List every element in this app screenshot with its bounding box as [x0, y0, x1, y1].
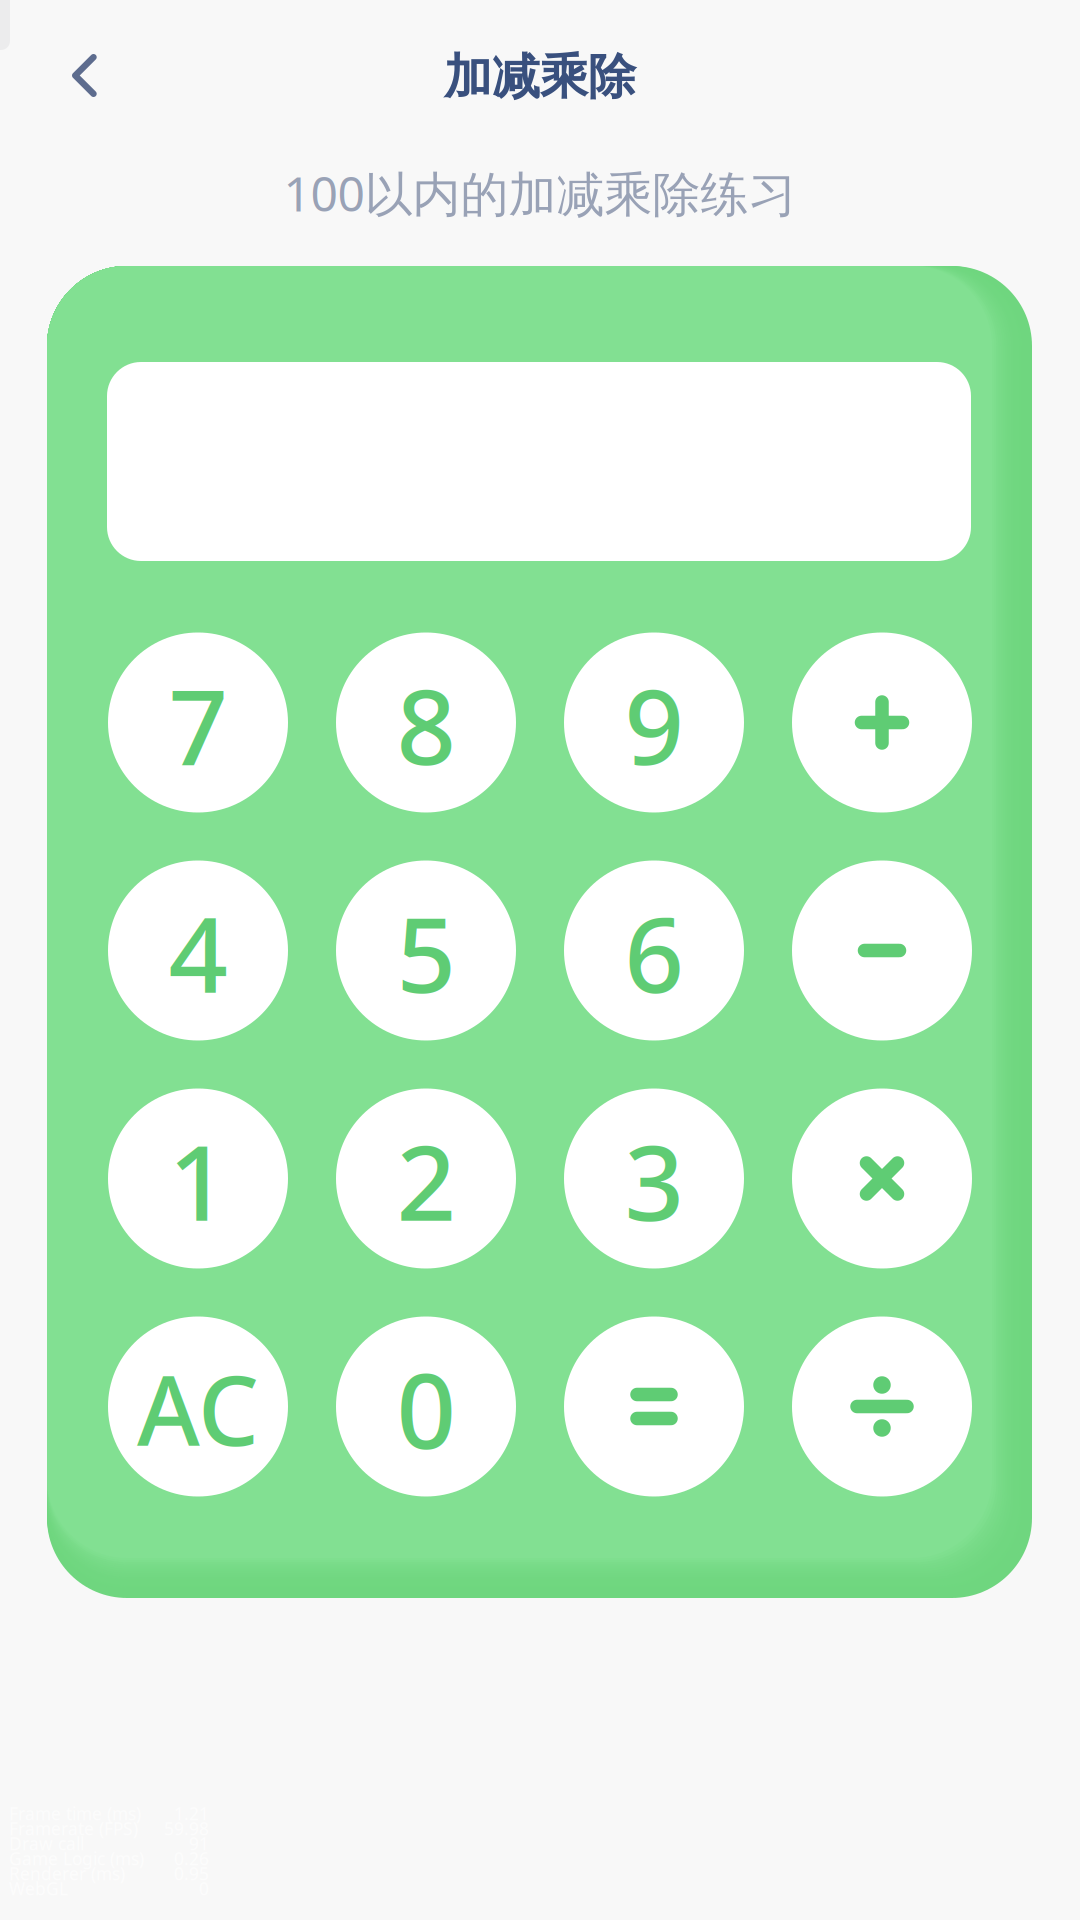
staticText: 6 — [624, 883, 683, 1021]
staticText: 5 — [396, 883, 455, 1021]
button[interactable]: 0 — [336, 1316, 516, 1496]
staticText: 4 — [168, 883, 227, 1021]
staticText: 3 — [624, 1111, 683, 1249]
staticText: 1 — [168, 1111, 227, 1249]
button[interactable]: Plus — [792, 632, 972, 812]
button[interactable]: 4 — [108, 860, 288, 1040]
staticText: 7 — [168, 655, 227, 793]
button[interactable]: 7 — [108, 632, 288, 812]
staticText: 100以内的加减乘除练习 — [283, 161, 796, 225]
button[interactable]: Minus — [792, 860, 972, 1040]
button[interactable]: 3 — [564, 1088, 744, 1268]
button[interactable]: Multiply — [792, 1088, 972, 1268]
button[interactable]: 6 — [564, 860, 744, 1040]
button[interactable]: Divide — [792, 1316, 972, 1496]
staticText: 加减乘除 — [444, 47, 636, 106]
button[interactable]: 8 — [336, 632, 516, 812]
button[interactable]: Back — [34, 25, 134, 125]
button[interactable]: AC — [108, 1316, 288, 1496]
staticText: 2 — [396, 1111, 455, 1249]
staticText: 9 — [624, 655, 683, 793]
button[interactable]: 2 — [336, 1088, 516, 1268]
staticText: 0 — [396, 1339, 455, 1477]
staticText: AC — [137, 1345, 259, 1472]
staticText: 8 — [396, 655, 455, 793]
button[interactable]: 9 — [564, 632, 744, 812]
button[interactable]: 5 — [336, 860, 516, 1040]
button[interactable]: 1 — [108, 1088, 288, 1268]
button[interactable]: Equals — [564, 1316, 744, 1496]
